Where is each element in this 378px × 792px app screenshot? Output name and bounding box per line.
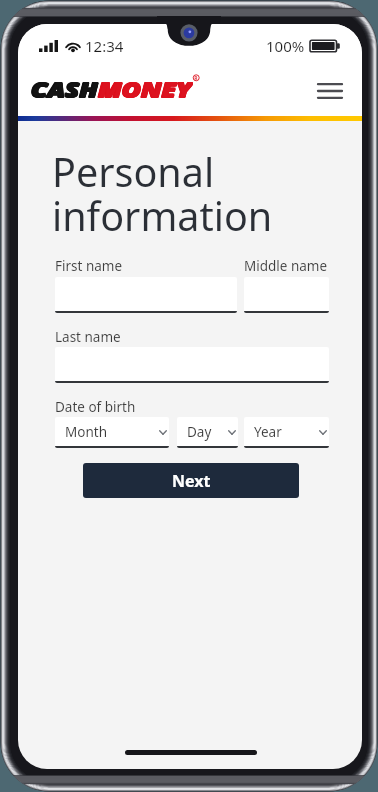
staticText: 12:34 bbox=[85, 36, 124, 56]
button[interactable]: Month bbox=[55, 417, 169, 448]
button[interactable]: Year bbox=[244, 417, 329, 448]
staticText: Day bbox=[187, 423, 212, 441]
staticText: Next bbox=[172, 470, 211, 492]
button[interactable] bbox=[55, 347, 329, 383]
button[interactable]: Menu bbox=[312, 71, 348, 111]
staticText: First name bbox=[55, 257, 123, 275]
staticText: 100% bbox=[266, 36, 305, 56]
button[interactable]: Day bbox=[177, 417, 238, 448]
button[interactable] bbox=[244, 277, 329, 313]
staticText: Month bbox=[65, 423, 107, 441]
staticText: Personal information bbox=[52, 145, 273, 243]
staticText: Last name bbox=[55, 328, 121, 346]
button[interactable]: Next bbox=[83, 463, 299, 498]
staticText: Date of birth bbox=[55, 398, 136, 416]
staticText: Middle name bbox=[244, 257, 328, 275]
staticText: Year bbox=[254, 423, 282, 441]
button[interactable]: Cash Money home bbox=[31, 76, 211, 102]
button[interactable] bbox=[55, 277, 237, 313]
